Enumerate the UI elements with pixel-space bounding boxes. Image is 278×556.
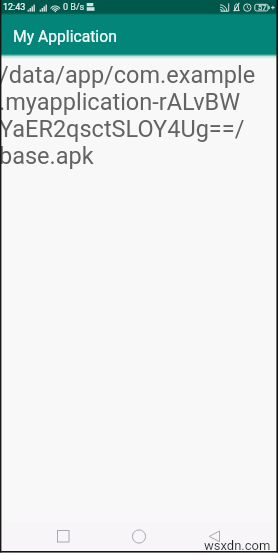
button[interactable]: Home — [124, 521, 154, 551]
button[interactable]: My Application — [0, 14, 278, 56]
staticText: 12:43 — [3, 2, 26, 13]
staticText: My Application — [13, 27, 117, 45]
button[interactable]: Back — [199, 521, 229, 551]
staticText: 57 — [258, 3, 267, 12]
button[interactable]: Recent apps — [48, 521, 78, 551]
staticText: wsxdn.com — [204, 538, 271, 553]
staticText: 0 B/s — [63, 2, 85, 13]
staticText: /data/app/com.example .myapplication-rAL… — [0, 61, 256, 169]
